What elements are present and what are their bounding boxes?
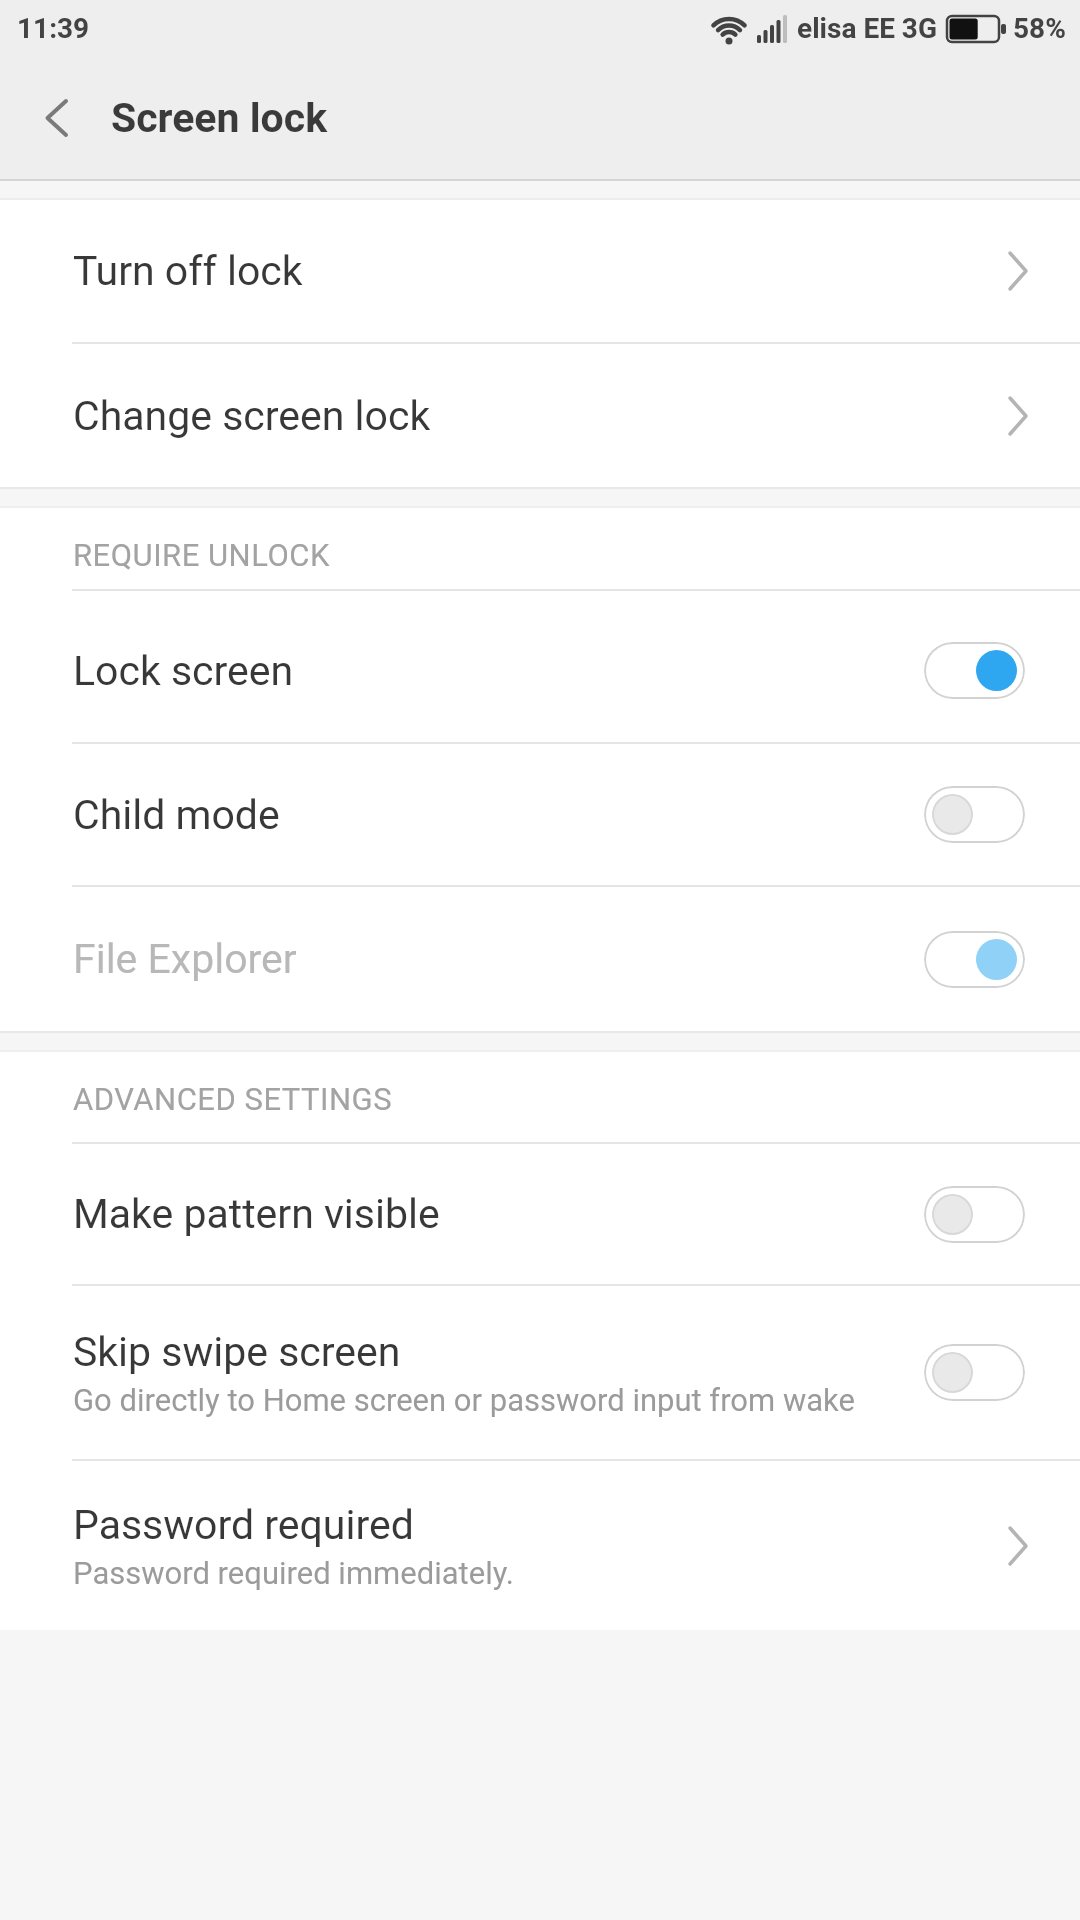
staticText: Change screen lock [73,392,431,440]
staticText: File Explorer [73,935,297,983]
staticText: REQUIRE UNLOCK [73,537,330,573]
button[interactable] [924,642,1025,699]
button[interactable]: Child mode [0,744,1080,885]
staticText: Password required immediately. [73,1555,514,1591]
button[interactable] [924,1344,1025,1401]
staticText: Password required [73,1501,414,1549]
button[interactable]: Turn off lock [0,200,1080,342]
button[interactable] [924,1186,1025,1243]
button[interactable] [924,786,1025,843]
button[interactable] [0,57,104,179]
button[interactable]: File Explorer [0,887,1080,1031]
button[interactable]: Make pattern visible [0,1144,1080,1284]
button[interactable]: Skip swipe screen [0,1286,1080,1459]
staticText: 11:39 [17,12,90,45]
button[interactable]: Lock screen [0,591,1080,742]
staticText: Skip swipe screen [73,1328,401,1376]
button[interactable]: Change screen lock [0,344,1080,487]
staticText: Screen lock [111,94,328,142]
staticText: Lock screen [73,647,294,695]
staticText: 58% [1013,12,1066,45]
staticText: Make pattern visible [73,1190,440,1238]
staticText: elisa EE 3G [797,12,937,45]
button[interactable] [924,931,1025,988]
staticText: Go directly to Home screen or password i… [73,1382,855,1418]
staticText: Child mode [73,791,280,839]
staticText: Turn off lock [73,247,303,295]
button[interactable]: Password required [0,1461,1080,1630]
staticText: ADVANCED SETTINGS [73,1081,393,1117]
